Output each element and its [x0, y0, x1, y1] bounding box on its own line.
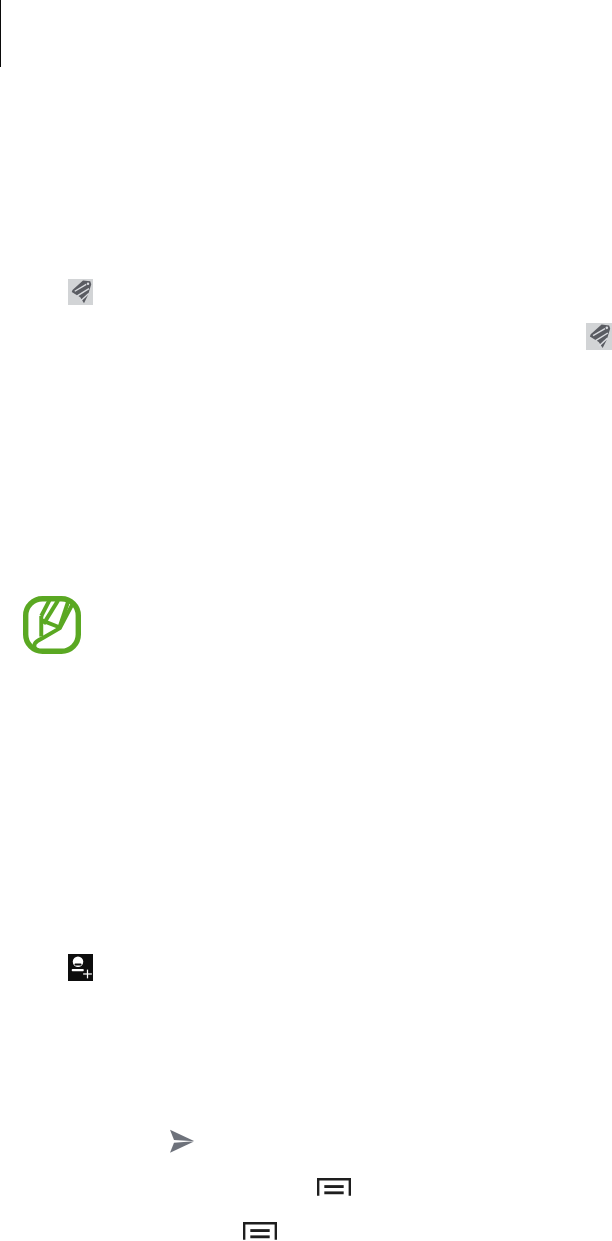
- button[interactable]: Add person: [68, 954, 93, 981]
- button[interactable]: Tag: [68, 279, 93, 305]
- button[interactable]: Tag: [586, 323, 612, 350]
- button[interactable]: Menu: [243, 1222, 277, 1241]
- button[interactable]: Memo app: [23, 596, 81, 654]
- button[interactable]: Send: [169, 1129, 194, 1153]
- button[interactable]: Menu: [317, 1178, 351, 1197]
